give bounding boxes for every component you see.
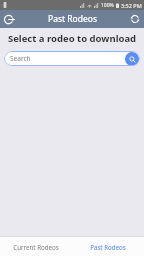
button[interactable]: Search	[4, 51, 140, 66]
button[interactable]: Refresh	[126, 10, 144, 28]
staticText: Select a rodeo to download	[0, 32, 144, 45]
staticText: 3:52 PM	[121, 2, 142, 9]
staticText: 100%	[101, 2, 114, 9]
staticText: Past Rodeos	[90, 243, 126, 251]
staticText: Search	[10, 54, 31, 63]
button[interactable]: Past Rodeos	[72, 237, 144, 256]
staticText: Current Rodeos	[13, 243, 59, 251]
button[interactable]: Current Rodeos	[0, 237, 72, 256]
staticText: Past Rodeos	[48, 13, 97, 25]
button[interactable]: Log out	[0, 10, 18, 28]
button[interactable]: Search	[125, 52, 139, 66]
